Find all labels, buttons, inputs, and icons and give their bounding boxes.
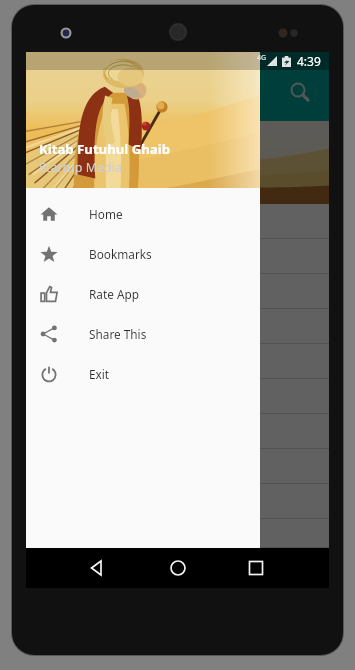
button[interactable] [26, 274, 329, 309]
staticText: Bookmarks [89, 246, 152, 262]
button[interactable]: Recents [241, 553, 271, 583]
staticText: Kitab Futuhul Ghaib [39, 140, 170, 158]
staticText: 4:39 [297, 53, 321, 69]
button[interactable]: Share This [26, 314, 260, 354]
button[interactable]: Bookmarks [26, 234, 260, 274]
button[interactable]: Back [82, 553, 112, 583]
button[interactable] [26, 414, 329, 449]
button[interactable] [26, 239, 329, 274]
button[interactable]: Exit [26, 354, 260, 394]
staticText: Home [89, 206, 123, 222]
button[interactable] [26, 449, 329, 484]
staticText: Startup Media [39, 159, 123, 176]
button[interactable] [26, 344, 329, 379]
staticText: Rate App [89, 286, 139, 302]
button[interactable] [26, 204, 329, 239]
button[interactable] [26, 484, 329, 519]
staticText: 4G [257, 53, 267, 63]
staticText: Share This [89, 326, 147, 342]
button[interactable] [26, 309, 329, 344]
button[interactable]: Rate App [26, 274, 260, 314]
button[interactable]: Search [285, 77, 316, 108]
button[interactable]: Home [163, 553, 193, 583]
button[interactable] [26, 379, 329, 414]
staticText: Exit [89, 366, 110, 382]
button[interactable]: Home [26, 194, 260, 234]
button[interactable] [26, 519, 329, 548]
